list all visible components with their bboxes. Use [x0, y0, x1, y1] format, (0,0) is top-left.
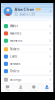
- staticText: Services: [10, 62, 20, 66]
- staticText: ID: alexchen_88: [14, 13, 35, 16]
- button[interactable]: Favorites: [1, 30, 53, 37]
- button[interactable]: Wallet: [1, 23, 53, 30]
- staticText: Stickers: [10, 47, 19, 51]
- staticText: Orders: [10, 69, 19, 73]
- button[interactable]: Moments: [1, 37, 53, 44]
- staticText: PRO: [37, 8, 40, 10]
- button[interactable]: Me: [40, 84, 53, 92]
- button[interactable]: Orders: [1, 68, 53, 75]
- staticText: Discover: [30, 89, 37, 91]
- button[interactable]: Discover: [27, 84, 40, 92]
- staticText: Me: [46, 89, 48, 91]
- button[interactable]: Cards: [1, 53, 53, 60]
- staticText: Chats: [5, 89, 9, 91]
- button[interactable]: Alex Chen: [1, 7, 53, 16]
- button[interactable]: Services: [1, 60, 53, 67]
- button[interactable]: Chats: [1, 84, 14, 92]
- staticText: Cards: [10, 55, 17, 58]
- staticText: Settings: [10, 78, 21, 81]
- staticText: Moments: [10, 39, 22, 42]
- button[interactable]: Settings: [1, 76, 53, 83]
- button[interactable]: Contacts: [14, 84, 27, 92]
- staticText: Wallet: [10, 24, 18, 28]
- staticText: Alex Chen: [14, 7, 34, 12]
- staticText: Contacts: [18, 89, 24, 91]
- staticText: Favorites: [10, 32, 21, 35]
- button[interactable]: Stickers: [1, 46, 53, 53]
